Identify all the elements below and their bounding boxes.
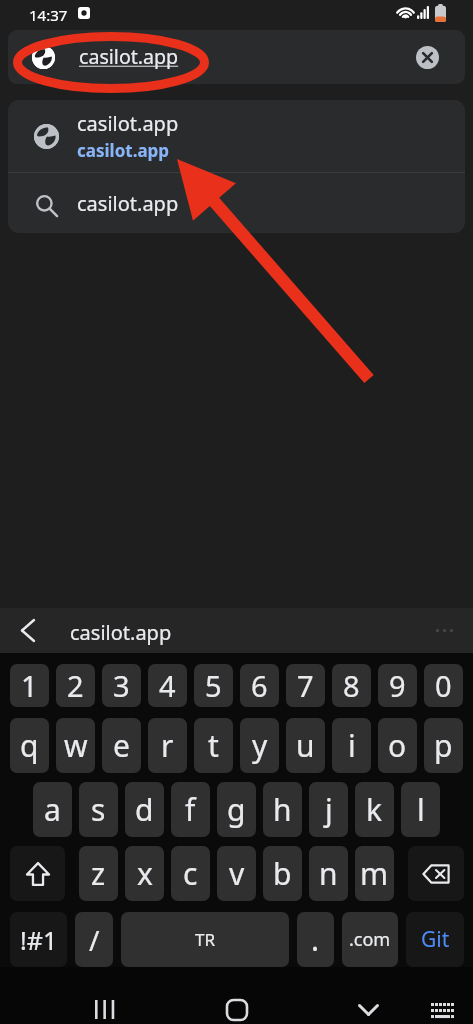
staticText: t	[208, 725, 219, 766]
button[interactable]: !#1	[10, 912, 67, 967]
staticText: 3	[113, 666, 130, 705]
staticText: Git	[421, 925, 450, 954]
button[interactable]: .com	[342, 912, 398, 967]
button[interactable]: 6	[240, 664, 279, 707]
button[interactable]: More options	[422, 608, 467, 653]
button[interactable]: Hide keyboard	[342, 983, 395, 1024]
button[interactable]: 7	[286, 664, 325, 707]
button[interactable]: s	[79, 782, 118, 837]
staticText: h	[273, 789, 292, 830]
button[interactable]: a	[33, 782, 72, 837]
staticText: 9	[389, 666, 406, 705]
button[interactable]: Shift	[10, 846, 65, 901]
staticText: k	[366, 789, 383, 830]
button[interactable]: casilot.app	[8, 100, 465, 172]
button[interactable]: /	[75, 912, 113, 967]
staticText: TR	[195, 928, 216, 951]
button[interactable]: f	[171, 782, 210, 837]
button[interactable]: .	[297, 912, 334, 967]
staticText: m	[360, 853, 389, 894]
button[interactable]: 9	[378, 664, 417, 707]
button[interactable]: l	[401, 782, 440, 837]
button[interactable]: Clear text	[403, 33, 451, 81]
staticText: n	[319, 853, 338, 894]
staticText: .com	[349, 927, 391, 952]
staticText: 8	[343, 666, 360, 705]
staticText: g	[227, 789, 246, 830]
button[interactable]: t	[194, 718, 233, 773]
staticText: 7	[297, 666, 314, 705]
button[interactable]: Back	[4, 608, 49, 653]
button[interactable]: casilot.app	[8, 173, 465, 233]
button[interactable]: v	[217, 846, 256, 901]
staticText: x	[137, 853, 153, 894]
button[interactable]: x	[125, 846, 164, 901]
button[interactable]: Git	[406, 912, 464, 967]
button[interactable]: Backspace	[408, 846, 464, 901]
staticText: .	[311, 919, 320, 960]
button[interactable]: 1	[10, 664, 49, 707]
staticText: e	[113, 725, 130, 766]
button[interactable]: p	[424, 718, 463, 773]
button[interactable]: TR	[121, 912, 289, 967]
button[interactable]: e	[102, 718, 141, 773]
staticText: p	[434, 725, 453, 766]
button[interactable]: i	[332, 718, 371, 773]
button[interactable]: b	[263, 846, 302, 901]
staticText: 14:37	[29, 5, 68, 25]
staticText: c	[183, 853, 198, 894]
staticText: 0	[435, 666, 452, 705]
button[interactable]: u	[286, 718, 325, 773]
button[interactable]: c	[171, 846, 210, 901]
staticText: j	[325, 789, 333, 830]
button[interactable]: 5	[194, 664, 233, 707]
button[interactable]: w	[56, 718, 95, 773]
button[interactable]: 0	[424, 664, 463, 707]
button[interactable]: 3	[102, 664, 141, 707]
button[interactable]: 2	[56, 664, 95, 707]
staticText: !#1	[20, 923, 58, 957]
staticText: 1	[21, 666, 38, 705]
staticText: s	[91, 789, 106, 830]
button[interactable]: d	[125, 782, 164, 837]
button[interactable]: Switch keyboard	[416, 983, 469, 1024]
staticText: casilot.app	[79, 43, 179, 70]
staticText: f	[185, 789, 196, 830]
staticText: d	[135, 789, 154, 830]
staticText: 5	[205, 666, 222, 705]
button[interactable]: q	[10, 718, 49, 773]
button[interactable]: r	[148, 718, 187, 773]
staticText: r	[161, 725, 174, 766]
button[interactable]: 8	[332, 664, 371, 707]
staticText: 4	[159, 666, 176, 705]
button[interactable]: z	[79, 846, 118, 901]
staticText: a	[44, 789, 61, 830]
staticText: casilot.app	[77, 139, 170, 162]
staticText: b	[273, 853, 292, 894]
button[interactable]: y	[240, 718, 279, 773]
button[interactable]: Home	[210, 983, 263, 1024]
staticText: casilot.app	[77, 190, 179, 217]
staticText: y	[252, 725, 268, 766]
staticText: casilot.app	[70, 619, 172, 646]
button[interactable]: h	[263, 782, 302, 837]
button[interactable]: k	[355, 782, 394, 837]
staticText: o	[388, 725, 407, 766]
button[interactable]: casilot.app	[8, 30, 465, 84]
button[interactable]: n	[309, 846, 348, 901]
staticText: /	[89, 921, 100, 959]
staticText: 6	[251, 666, 268, 705]
staticText: u	[296, 725, 315, 766]
staticText: casilot.app	[77, 110, 179, 137]
button[interactable]: Recent apps	[78, 983, 131, 1024]
staticText: l	[417, 789, 425, 830]
button[interactable]: g	[217, 782, 256, 837]
staticText: 2	[67, 666, 84, 705]
staticText: w	[64, 725, 88, 766]
button[interactable]: m	[355, 846, 394, 901]
staticText: i	[348, 725, 356, 766]
button[interactable]: j	[309, 782, 348, 837]
staticText: z	[91, 853, 106, 894]
button[interactable]: o	[378, 718, 417, 773]
button[interactable]: 4	[148, 664, 187, 707]
